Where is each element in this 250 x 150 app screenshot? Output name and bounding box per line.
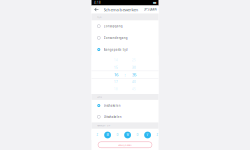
staticText: Schema bewerken: [103, 7, 138, 12]
staticText: ACTIE: [97, 96, 102, 98]
button[interactable]: OPSLAAN: [143, 5, 157, 13]
button[interactable]: Back: [91, 5, 101, 13]
button[interactable]: Aangepaste tijd: [91, 44, 158, 55]
button[interactable]: V: [143, 130, 153, 139]
button[interactable]: D: [133, 130, 143, 139]
staticText: W: [127, 133, 129, 137]
staticText: TIJD: [97, 15, 101, 18]
button[interactable]: Zonsondergang: [91, 32, 158, 44]
staticText: Z: [97, 133, 99, 137]
staticText: OPSLAAN: [143, 8, 156, 11]
staticText: 15: [114, 65, 118, 69]
staticText: Inschakelen: [104, 104, 121, 107]
staticText: V: [147, 133, 149, 137]
button[interactable]: Zonsopgang: [91, 20, 158, 32]
button[interactable]: Z: [93, 130, 103, 139]
button[interactable]: M: [103, 130, 113, 139]
staticText: 35: [132, 72, 136, 78]
button[interactable]: Uitschakelen: [91, 111, 158, 122]
staticText: 25: [132, 58, 136, 62]
staticText: 45: [132, 87, 136, 91]
staticText: 14: [114, 58, 118, 62]
staticText: VERWIJDEREN: [118, 143, 132, 146]
button[interactable]: Z: [153, 130, 163, 139]
staticText: 17: [114, 80, 118, 84]
button[interactable]: D: [113, 130, 123, 139]
staticText: 18: [114, 87, 118, 91]
staticText: M: [107, 133, 109, 137]
staticText: ▮▮▮: [153, 1, 156, 4]
staticText: Zonsondergang: [104, 36, 128, 40]
staticText: Aangepaste tijd: [104, 48, 128, 51]
button[interactable]: VERWIJDEREN: [98, 142, 152, 148]
staticText: :: [124, 72, 125, 77]
staticText: D: [117, 133, 119, 137]
staticText: 40: [132, 80, 136, 84]
button[interactable]: Inschakelen: [91, 100, 158, 111]
staticText: Uitschakelen: [104, 115, 122, 119]
staticText: Z: [157, 133, 159, 137]
staticText: D: [137, 133, 139, 137]
staticText: Zonsopgang: [104, 24, 123, 28]
staticText: 16: [114, 72, 118, 78]
staticText: HERHALEN OP: [97, 124, 110, 127]
staticText: 30: [132, 65, 136, 69]
staticText: 4:18: [94, 1, 101, 4]
button[interactable]: W: [123, 130, 133, 139]
